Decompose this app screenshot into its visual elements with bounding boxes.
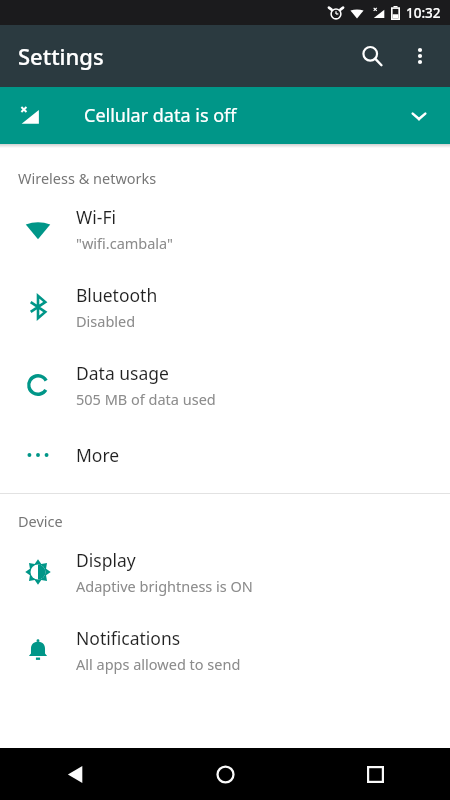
button[interactable]: Notifications xyxy=(0,611,450,689)
other: Expand xyxy=(402,99,436,133)
button[interactable]: Cellular data is off xyxy=(0,87,450,144)
staticText: More xyxy=(76,443,120,467)
staticText: Settings xyxy=(18,41,104,71)
staticText: Wi-Fi xyxy=(76,205,117,229)
staticText: 10:32 xyxy=(406,4,441,22)
button[interactable]: Search xyxy=(348,32,396,80)
staticText: Notifications xyxy=(76,626,181,650)
staticText: Bluetooth xyxy=(76,283,158,307)
button[interactable]: More options xyxy=(396,32,444,80)
button[interactable]: Back xyxy=(0,748,150,800)
staticText: All apps allowed to send xyxy=(76,654,241,674)
button[interactable]: Bluetooth xyxy=(0,268,450,346)
button[interactable]: Recent apps xyxy=(300,748,450,800)
staticText: Disabled xyxy=(76,311,136,331)
button[interactable]: Display xyxy=(0,533,450,611)
staticText: "wifi.cambala" xyxy=(76,233,174,253)
staticText: Display xyxy=(76,548,136,572)
staticText: Data usage xyxy=(76,361,169,385)
button[interactable]: More xyxy=(0,424,450,486)
button[interactable]: Home xyxy=(150,748,300,800)
button[interactable]: Data usage xyxy=(0,346,450,424)
staticText: 505 MB of data used xyxy=(76,389,216,409)
staticText: Device xyxy=(18,511,63,531)
staticText: Adaptive brightness is ON xyxy=(76,576,253,596)
staticText: Cellular data is off xyxy=(84,103,237,128)
staticText: Wireless & networks xyxy=(18,168,157,188)
button[interactable]: Wi-Fi xyxy=(0,190,450,268)
